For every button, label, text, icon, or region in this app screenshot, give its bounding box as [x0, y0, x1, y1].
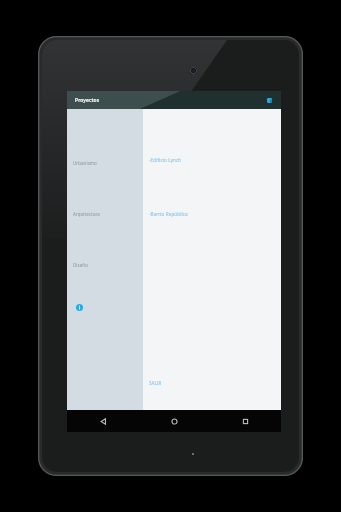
- button[interactable]: Diseño: [67, 259, 143, 270]
- button[interactable]: Home: [139, 410, 210, 432]
- button[interactable]: Action: [265, 96, 274, 105]
- staticText: Urbanismo: [73, 160, 97, 166]
- button[interactable]: Información: [73, 301, 85, 313]
- button[interactable]: -Edificio Lynch: [143, 154, 281, 165]
- button[interactable]: Arquitectura: [67, 208, 143, 219]
- staticText: Proyectos: [75, 97, 100, 104]
- button[interactable]: Recents: [210, 410, 281, 432]
- staticText: Diseño: [73, 262, 88, 268]
- button[interactable]: SALIR: [149, 380, 162, 386]
- staticText: Arquitectura: [73, 211, 100, 217]
- button[interactable]: Back: [67, 410, 139, 432]
- button[interactable]: Urbanismo: [67, 157, 143, 168]
- button[interactable]: -Barrio República: [143, 208, 281, 219]
- staticText: -Edificio Lynch: [149, 157, 182, 163]
- staticText: SALIR: [149, 380, 162, 386]
- staticText: -Barrio República: [149, 211, 188, 217]
